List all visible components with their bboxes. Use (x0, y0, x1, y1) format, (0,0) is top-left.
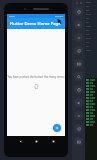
button[interactable]: Zoom (74, 85, 83, 94)
button[interactable]: Increment (53, 124, 61, 132)
button[interactable]: Overview (74, 124, 83, 133)
button[interactable]: Rotate right (74, 59, 83, 68)
staticText: 0 (34, 81, 39, 91)
button[interactable]: Home (32, 137, 40, 145)
staticText: Flutter Demo Home Page (10, 21, 61, 27)
staticText: You have pushed the button this many tim… (7, 75, 65, 79)
button[interactable]: Flutter Demo Home Page (7, 18, 65, 29)
button[interactable]: Back (16, 137, 24, 145)
button[interactable]: Volume down (74, 33, 83, 42)
button[interactable]: Screenshot (74, 72, 83, 81)
button[interactable]: More (74, 137, 83, 146)
button[interactable]: Home (74, 111, 83, 120)
button[interactable]: Volume up (74, 20, 83, 29)
button[interactable]: Recents (49, 137, 57, 145)
button[interactable]: Back (74, 98, 83, 107)
button[interactable]: Rotate left (74, 46, 83, 55)
button[interactable]: Power (74, 7, 83, 16)
